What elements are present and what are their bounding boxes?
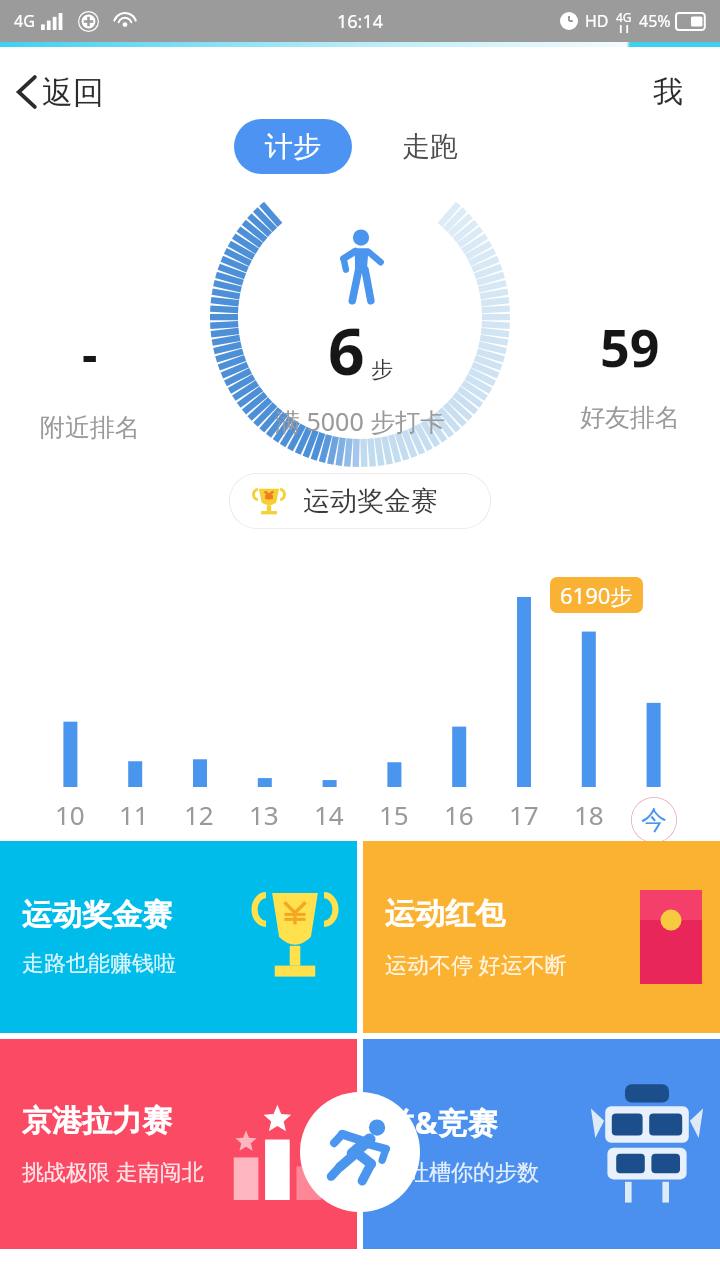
staticText: 17	[509, 797, 539, 832]
staticText: 11	[119, 797, 149, 832]
staticText: 4G	[14, 10, 35, 32]
staticText: 4G	[616, 9, 632, 25]
staticText: 运动不停 好运不断	[385, 949, 567, 979]
staticText: 步	[371, 356, 393, 384]
staticText: 运动奖金赛	[22, 896, 172, 934]
staticText: 6	[328, 307, 365, 394]
staticText: 我	[653, 73, 683, 111]
staticText: 14	[314, 797, 344, 832]
staticText: 45%	[639, 10, 671, 32]
staticText: 运动红包	[385, 895, 505, 933]
staticText: 诞吐槽你的步数	[385, 1159, 539, 1187]
staticText: 走路也能赚钱啦	[22, 950, 176, 978]
staticText: 走跑	[402, 129, 458, 164]
button[interactable]: 益&竞赛	[363, 1039, 720, 1249]
staticText: 15	[379, 797, 409, 832]
button[interactable]: 走跑	[376, 119, 484, 174]
staticText: 10	[55, 797, 85, 832]
button[interactable]: 计步	[234, 119, 352, 174]
button[interactable]: 京港拉力赛	[0, 1039, 357, 1249]
staticText: 16	[444, 797, 474, 832]
staticText: 今	[641, 804, 667, 837]
button[interactable]: 运动红包	[363, 841, 720, 1033]
button[interactable]: 运动奖金赛	[229, 473, 491, 529]
button[interactable]: 今	[631, 797, 677, 843]
staticText: -	[82, 321, 98, 386]
button[interactable]: Start running	[300, 1092, 420, 1212]
staticText: 计步	[265, 129, 321, 164]
staticText: 好友排名	[580, 402, 680, 433]
staticText: 返回	[42, 73, 104, 112]
staticText: 13	[249, 797, 279, 832]
staticText: 附近排名	[40, 412, 140, 443]
staticText: 59	[600, 311, 660, 382]
staticText: 18	[574, 797, 604, 832]
button[interactable]: 返回	[14, 70, 104, 114]
staticText: 16:14	[337, 9, 384, 34]
staticText: 益&竞赛	[385, 1102, 498, 1143]
staticText: 12	[184, 797, 214, 832]
button[interactable]: 运动奖金赛	[0, 841, 357, 1033]
staticText: HD	[585, 10, 609, 32]
staticText: 满 5000 步打卡	[275, 404, 446, 438]
staticText: 6190步	[560, 580, 633, 610]
button[interactable]: 我	[636, 63, 700, 121]
staticText: 挑战极限 走南闯北	[22, 1156, 204, 1186]
staticText: 运动奖金赛	[303, 484, 438, 518]
staticText: 京港拉力赛	[22, 1102, 172, 1140]
